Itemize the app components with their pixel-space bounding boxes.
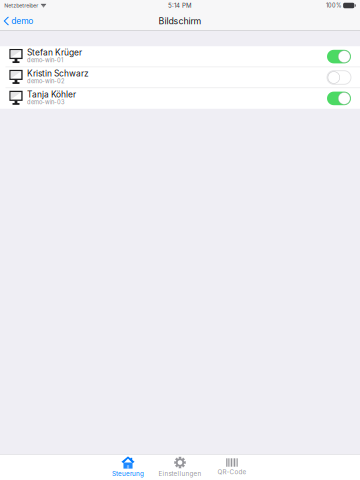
staticText: 100% — [326, 2, 341, 9]
staticText: demo-win-03 — [27, 99, 65, 105]
staticText: QR-Code — [217, 468, 246, 476]
staticText: 5:14 PM — [168, 2, 192, 9]
button[interactable]: Bildschirm deaktiviert — [327, 71, 351, 84]
staticText: Steuerung — [112, 470, 144, 478]
button[interactable]: demo — [0, 11, 38, 31]
staticText: demo-win-02 — [27, 78, 64, 85]
button[interactable]: Einstellungen — [154, 454, 206, 480]
staticText: Einstellungen — [158, 470, 201, 477]
button[interactable]: Tanja Köhler — [0, 88, 360, 108]
staticText: Kristin Schwarz — [27, 68, 89, 78]
staticText: demo — [11, 16, 33, 26]
button[interactable]: QR-Code — [206, 454, 258, 480]
staticText: Bildschirm — [158, 16, 201, 26]
button[interactable]: Stefan Krüger — [0, 46, 360, 67]
button[interactable]: Bildschirm aktiviert — [327, 92, 351, 105]
staticText: Netzbetreiber — [4, 2, 38, 9]
button[interactable]: Bildschirm aktiviert — [327, 50, 351, 63]
staticText: Tanja Köhler — [27, 89, 76, 99]
staticText: Stefan Krüger — [27, 47, 82, 58]
button[interactable]: Kristin Schwarz — [0, 67, 360, 88]
button[interactable]: Steuerung — [102, 454, 154, 480]
staticText: demo-win-01 — [27, 57, 63, 64]
